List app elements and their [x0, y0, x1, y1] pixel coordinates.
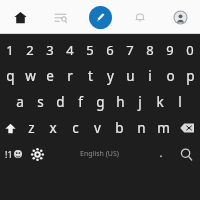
button[interactable]: l	[170, 89, 190, 115]
button[interactable]: Symbols and emoji	[0, 141, 26, 167]
button[interactable]: 6	[100, 37, 120, 63]
staticText: u	[126, 67, 135, 85]
staticText: 3	[46, 41, 54, 59]
button[interactable]: y	[100, 63, 120, 89]
staticText: 4	[66, 41, 74, 59]
staticText: a	[16, 93, 24, 111]
staticText: v	[94, 119, 101, 137]
staticText: 7	[126, 41, 134, 59]
button[interactable]: o	[160, 63, 180, 89]
staticText: q	[6, 67, 15, 85]
staticText: English (US)	[80, 149, 119, 159]
staticText: z	[28, 119, 35, 137]
button[interactable]: Settings	[26, 141, 48, 167]
button[interactable]: j	[130, 89, 150, 115]
button[interactable]: a	[10, 89, 30, 115]
button[interactable]: Profile	[160, 0, 200, 34]
staticText: 1	[6, 41, 14, 59]
staticText: k	[156, 93, 164, 111]
button[interactable]: i	[140, 63, 160, 89]
button[interactable]: n	[130, 115, 152, 141]
button[interactable]: Shift	[0, 115, 20, 141]
staticText: n	[137, 119, 146, 137]
staticText: 8	[146, 41, 154, 59]
staticText: x	[49, 119, 57, 137]
staticText: e	[46, 67, 54, 85]
button[interactable]: s	[30, 89, 50, 115]
button[interactable]: d	[50, 89, 70, 115]
button[interactable]: Search	[40, 0, 80, 34]
button[interactable]: 0	[180, 37, 200, 63]
button[interactable]: e	[40, 63, 60, 89]
button[interactable]: 4	[60, 37, 80, 63]
staticText: b	[115, 119, 124, 137]
staticText: 9	[166, 41, 174, 59]
button[interactable]: 9	[160, 37, 180, 63]
button[interactable]: 2	[20, 37, 40, 63]
button[interactable]: m	[152, 115, 174, 141]
staticText: i	[148, 67, 152, 85]
button[interactable]: w	[20, 63, 40, 89]
button[interactable]: h	[110, 89, 130, 115]
button[interactable]: z	[20, 115, 42, 141]
staticText: f	[78, 93, 83, 111]
button[interactable]: 5	[80, 37, 100, 63]
staticText: r	[67, 67, 73, 85]
staticText: d	[56, 93, 65, 111]
button[interactable]: 3	[40, 37, 60, 63]
button[interactable]: q	[0, 63, 20, 89]
staticText: h	[116, 93, 125, 111]
button[interactable]: u	[120, 63, 140, 89]
button[interactable]: b	[108, 115, 130, 141]
button[interactable]: k	[150, 89, 170, 115]
staticText: j	[138, 93, 142, 111]
button[interactable]: 7	[120, 37, 140, 63]
button[interactable]: English (US)	[48, 141, 150, 167]
button[interactable]: r	[60, 63, 80, 89]
staticText: p	[186, 67, 195, 85]
button[interactable]: Home	[0, 0, 40, 34]
button[interactable]: Notifications	[120, 0, 160, 34]
staticText: s	[37, 93, 44, 111]
staticText: y	[107, 67, 114, 85]
button[interactable]: c	[64, 115, 86, 141]
button[interactable]: f	[70, 89, 90, 115]
staticText: 0	[186, 41, 194, 59]
staticText: t	[88, 67, 93, 85]
staticText: 6	[106, 41, 114, 59]
staticText: 2	[26, 41, 34, 59]
button[interactable]: Compose	[80, 0, 120, 34]
button[interactable]: g	[90, 89, 110, 115]
staticText: m	[157, 119, 170, 137]
button[interactable]: t	[80, 63, 100, 89]
button[interactable]: v	[86, 115, 108, 141]
button[interactable]: Search	[172, 141, 200, 167]
button[interactable]: Backspace	[174, 115, 200, 141]
button[interactable]: x	[42, 115, 64, 141]
staticText: c	[72, 119, 79, 137]
staticText: w	[25, 67, 36, 85]
button[interactable]	[150, 141, 172, 167]
staticText: l	[178, 93, 182, 111]
staticText: 5	[86, 41, 94, 59]
staticText: g	[96, 93, 105, 111]
staticText: o	[166, 67, 175, 85]
staticText: !1	[5, 148, 13, 160]
button[interactable]: 8	[140, 37, 160, 63]
button[interactable]: 1	[0, 37, 20, 63]
button[interactable]: p	[180, 63, 200, 89]
